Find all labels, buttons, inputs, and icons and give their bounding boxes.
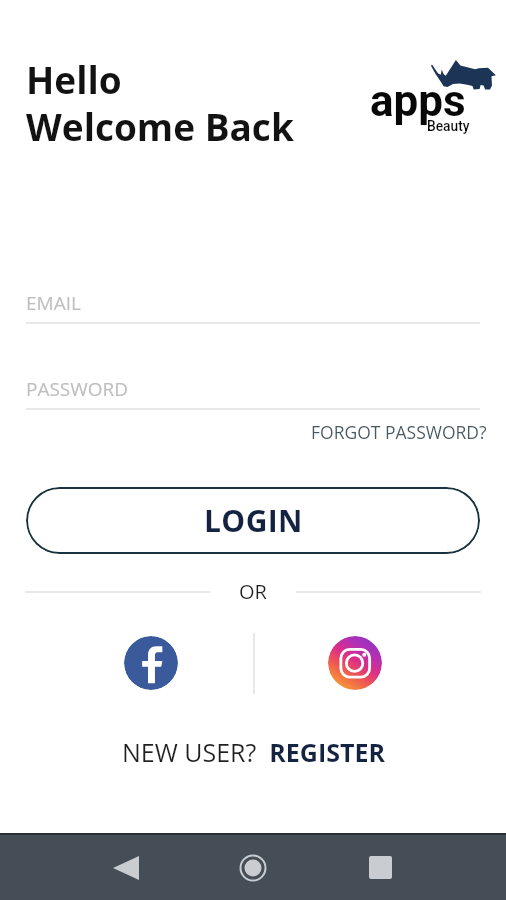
staticText: OR — [239, 578, 267, 605]
button[interactable]: PASSWORD — [26, 376, 480, 410]
button[interactable]: LOGIN — [26, 487, 480, 554]
button[interactable]: Home — [211, 835, 295, 900]
button[interactable]: NEW USER? REGISTER — [114, 730, 393, 774]
staticText: NEW USER? REGISTER — [122, 735, 385, 769]
button[interactable]: Sign in with Facebook — [124, 636, 178, 690]
staticText: EMAIL — [26, 290, 81, 316]
staticText: apps — [370, 75, 466, 127]
staticText: Hello Welcome Back — [26, 54, 294, 152]
button[interactable]: Sign in with Instagram — [328, 636, 382, 690]
staticText: PASSWORD — [26, 376, 129, 402]
staticText: LOGIN — [204, 500, 303, 541]
button[interactable]: Back — [84, 835, 168, 900]
button[interactable]: EMAIL — [26, 290, 480, 324]
staticText: Beauty — [427, 118, 470, 134]
button[interactable]: Recent apps — [338, 835, 422, 900]
staticText: FORGOT PASSWORD? — [311, 420, 487, 444]
button[interactable]: FORGOT PASSWORD? — [305, 416, 493, 448]
